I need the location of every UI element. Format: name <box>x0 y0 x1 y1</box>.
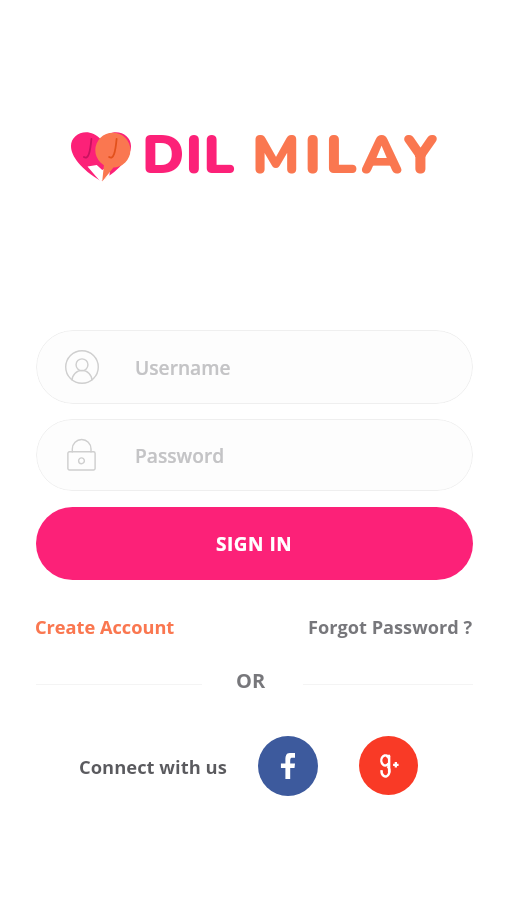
button[interactable]: Create Account <box>29 607 181 648</box>
staticText: Connect with us <box>79 754 227 779</box>
button[interactable]: Sign in with Facebook <box>258 736 318 796</box>
button[interactable]: Sign in with Google Plus <box>359 736 418 795</box>
staticText: OR <box>236 667 266 694</box>
staticText: MILAY <box>252 118 443 192</box>
staticText: Forgot Password ? <box>308 615 473 640</box>
staticText: Username <box>135 354 231 380</box>
staticText: SIGN IN <box>216 531 293 557</box>
button[interactable]: Forgot Password ? <box>302 607 479 648</box>
staticText: DIL <box>142 118 236 192</box>
button[interactable]: Password <box>36 419 473 491</box>
staticText: Password <box>135 442 225 468</box>
button[interactable]: SIGN IN <box>36 507 473 580</box>
button[interactable]: Username <box>36 330 473 404</box>
staticText: Create Account <box>35 615 175 640</box>
